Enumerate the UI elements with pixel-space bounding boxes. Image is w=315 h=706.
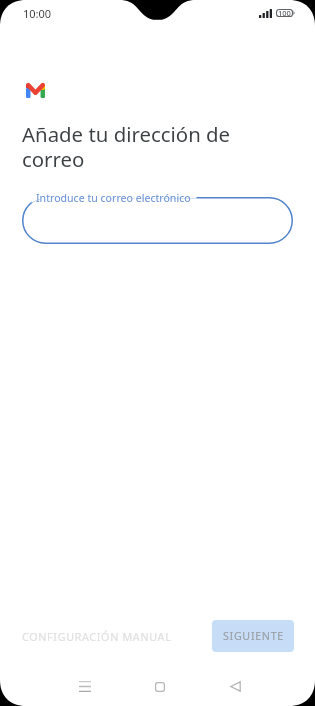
- staticText: SIGUIENTE: [223, 629, 284, 644]
- staticText: Introduce tu correo electrónico: [36, 191, 191, 205]
- staticText: 10:00: [23, 6, 52, 21]
- button[interactable]: Inicio: [136, 667, 184, 706]
- button[interactable]: SIGUIENTE: [212, 620, 294, 652]
- button[interactable]: CONFIGURACIÓN MANUAL: [14, 624, 180, 651]
- button[interactable]: Recientes: [61, 667, 109, 706]
- staticText: CONFIGURACIÓN MANUAL: [22, 630, 172, 645]
- staticText: Añade tu dirección de correo: [22, 120, 257, 173]
- staticText: 100: [278, 8, 291, 18]
- button[interactable]: Atrás: [211, 667, 259, 706]
